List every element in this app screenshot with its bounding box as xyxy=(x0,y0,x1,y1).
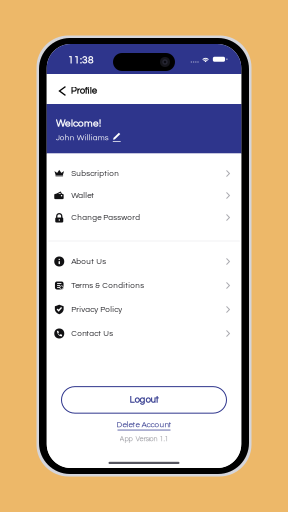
button[interactable]: Subscription xyxy=(47,162,241,184)
staticText: Subscription xyxy=(71,169,119,178)
button[interactable]: About Us xyxy=(47,249,241,273)
staticText: Wallet xyxy=(71,191,94,200)
button[interactable]: Wallet xyxy=(47,184,241,206)
staticText: Contact Us xyxy=(71,329,113,338)
button[interactable]: Logout xyxy=(61,387,226,413)
staticText: Logout xyxy=(129,395,158,405)
staticText: John Williams xyxy=(56,134,109,142)
button[interactable]: Change Password xyxy=(47,206,241,228)
staticText: 11:38 xyxy=(68,55,94,66)
button[interactable]: Delete Account xyxy=(116,413,171,430)
staticText: Privacy Policy xyxy=(71,305,122,314)
button[interactable]: Privacy Policy xyxy=(47,297,241,321)
staticText: About Us xyxy=(71,257,106,266)
button[interactable]: Terms & Conditions xyxy=(47,273,241,297)
staticText: Change Password xyxy=(71,213,140,222)
button[interactable]: Profile xyxy=(47,74,105,104)
staticText: Welcome! xyxy=(56,118,101,129)
staticText: Delete Account xyxy=(116,421,171,429)
staticText: Profile xyxy=(71,86,97,96)
button[interactable]: Contact Us xyxy=(47,321,241,345)
staticText: Terms & Conditions xyxy=(71,281,144,290)
staticText: App Version 1.1 xyxy=(119,435,168,443)
